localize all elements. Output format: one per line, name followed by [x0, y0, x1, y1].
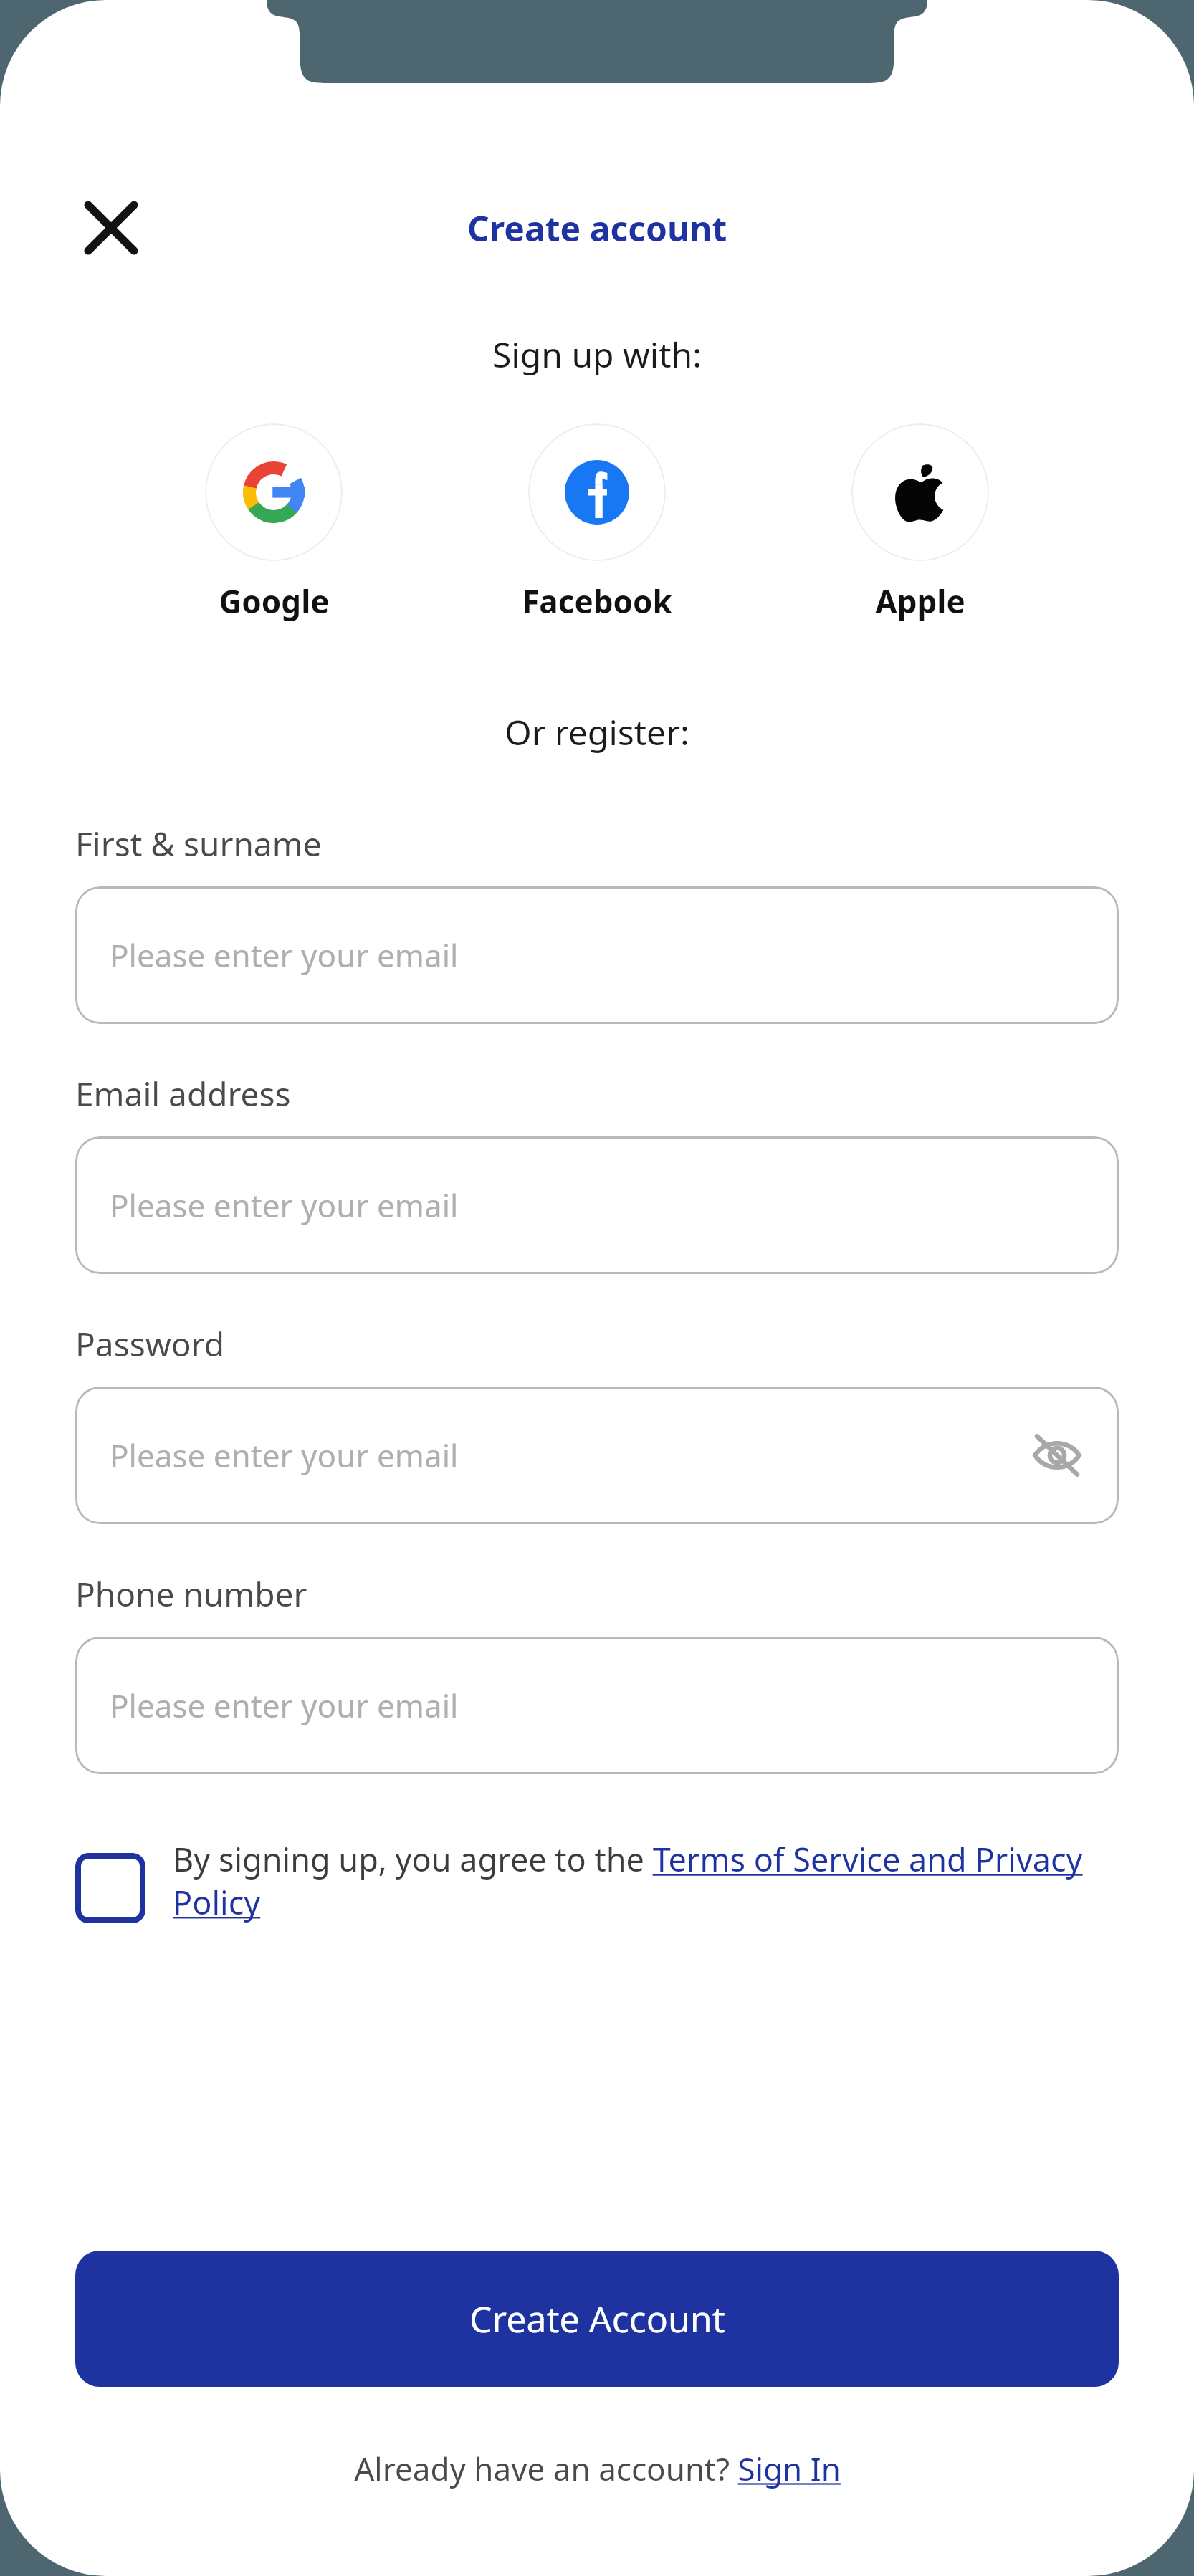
staticText: Apple	[875, 580, 965, 623]
button[interactable]: Please enter your email	[75, 1637, 1119, 1774]
staticText: Google	[219, 580, 330, 623]
button[interactable]: Apple	[847, 423, 993, 623]
button[interactable]: Please enter your email	[75, 1136, 1119, 1274]
button[interactable]: Google	[201, 423, 347, 623]
staticText: Phone number	[75, 1571, 307, 1617]
staticText: Already have an account? Sign In	[354, 2447, 841, 2490]
button[interactable]: Show password	[1020, 1418, 1094, 1493]
staticText: Please enter your email	[110, 1184, 459, 1227]
button[interactable]: Already have an account? Sign In	[0, 2447, 1194, 2490]
staticText: Email address	[75, 1071, 291, 1116]
staticText: Please enter your email	[110, 1684, 459, 1727]
staticText: Or register:	[0, 709, 1194, 755]
staticText: Facebook	[522, 580, 672, 623]
staticText: Password	[75, 1321, 225, 1366]
staticText: By signing up, you agree to the Terms of…	[173, 1837, 1119, 1924]
button[interactable]: Create Account	[75, 2251, 1119, 2387]
button[interactable]: Please enter your email	[75, 886, 1119, 1024]
button[interactable]: Facebook	[517, 423, 677, 623]
staticText: Create account	[467, 205, 727, 252]
other: Agree to terms	[75, 1853, 145, 1923]
staticText: Please enter your email	[110, 1434, 459, 1477]
button[interactable]: Please enter your email	[75, 1387, 1119, 1524]
staticText: Sign up with:	[0, 331, 1194, 378]
staticText: First & surname	[75, 821, 322, 866]
staticText: Create Account	[469, 2294, 725, 2343]
staticText: Please enter your email	[110, 934, 459, 977]
button[interactable]: Close	[65, 181, 158, 274]
button[interactable]: Agree to terms	[75, 1837, 1119, 1924]
